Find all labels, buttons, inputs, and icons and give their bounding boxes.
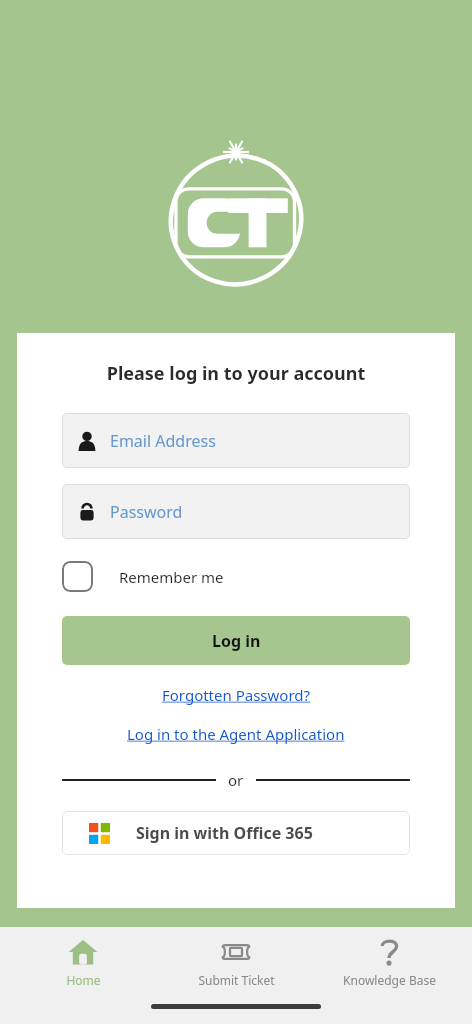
staticText: Forgotten Password?: [162, 685, 311, 705]
staticText: Log in to the Agent Application: [127, 724, 345, 744]
staticText: Log in: [212, 630, 261, 652]
button[interactable]: Email Address: [62, 413, 410, 468]
staticText: Remember me: [119, 567, 224, 587]
button[interactable]: Sign in with Office 365: [62, 811, 410, 855]
staticText: Sign in with Office 365: [136, 822, 313, 844]
staticText: Password: [110, 501, 183, 523]
button[interactable]: Knowledge Base: [319, 937, 459, 988]
staticText: Please log in to your account: [17, 361, 455, 386]
button[interactable]: Submit Ticket: [166, 937, 306, 988]
staticText: Knowledge Base: [343, 972, 436, 988]
button[interactable]: Remember me: [62, 561, 224, 592]
staticText: or: [228, 770, 244, 790]
staticText: Email Address: [110, 430, 216, 452]
button[interactable]: Password: [62, 484, 410, 539]
button[interactable]: Forgotten Password?: [17, 685, 455, 705]
staticText: Submit Ticket: [198, 972, 275, 988]
button[interactable]: Log in to the Agent Application: [17, 724, 455, 744]
staticText: Home: [66, 972, 101, 988]
button[interactable]: Home: [13, 937, 153, 988]
button[interactable]: Log in: [62, 616, 410, 665]
